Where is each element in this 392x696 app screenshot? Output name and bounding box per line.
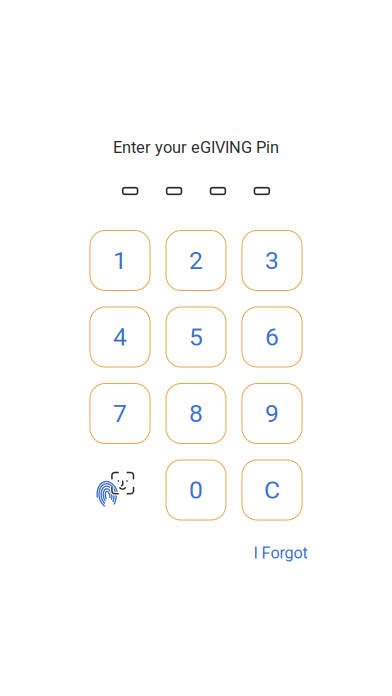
staticText: 0: [189, 475, 203, 504]
button[interactable]: 8: [166, 383, 226, 443]
button[interactable]: 2: [166, 230, 226, 290]
button[interactable]: 1: [90, 230, 150, 290]
staticText: 4: [113, 322, 127, 351]
button[interactable]: 6: [242, 307, 302, 367]
staticText: I Forgot: [253, 543, 307, 563]
staticText: 6: [265, 322, 279, 351]
button[interactable]: 5: [166, 307, 226, 367]
staticText: 1: [113, 246, 127, 275]
button[interactable]: 3: [242, 230, 302, 290]
staticText: Enter your eGIVING Pin: [113, 138, 279, 157]
button[interactable]: C: [242, 460, 302, 520]
staticText: 2: [189, 246, 203, 275]
staticText: 5: [189, 322, 203, 351]
staticText: 9: [265, 399, 279, 428]
button[interactable]: I Forgot: [253, 543, 307, 563]
button[interactable]: 7: [90, 383, 150, 443]
button[interactable]: 9: [242, 383, 302, 443]
button[interactable]: Sign in with Face ID or Touch ID: [90, 460, 150, 520]
staticText: 3: [265, 246, 279, 275]
button[interactable]: 0: [166, 460, 226, 520]
staticText: C: [264, 475, 280, 504]
staticText: 8: [189, 399, 203, 428]
button[interactable]: 4: [90, 307, 150, 367]
staticText: 7: [113, 399, 127, 428]
